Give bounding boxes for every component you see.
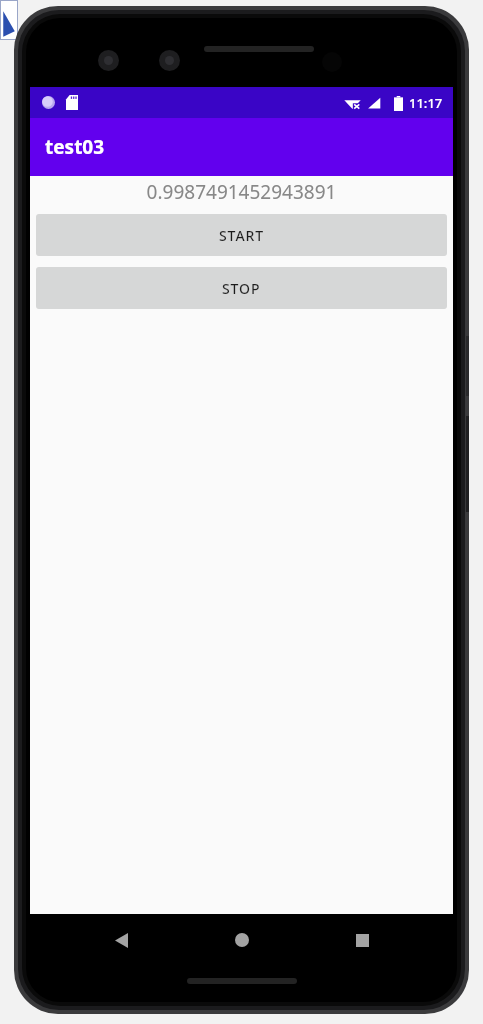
button[interactable]: Home — [212, 914, 272, 966]
button[interactable]: Recent apps — [332, 914, 392, 966]
staticText: test03 — [45, 134, 105, 160]
staticText: 11:17 — [409, 94, 443, 112]
button[interactable]: START — [36, 214, 447, 256]
button[interactable]: STOP — [36, 267, 447, 309]
staticText: 0.9987491452943891 — [30, 179, 453, 205]
staticText: STOP — [222, 279, 261, 298]
button[interactable]: Back — [91, 914, 151, 966]
staticText: START — [219, 226, 264, 245]
